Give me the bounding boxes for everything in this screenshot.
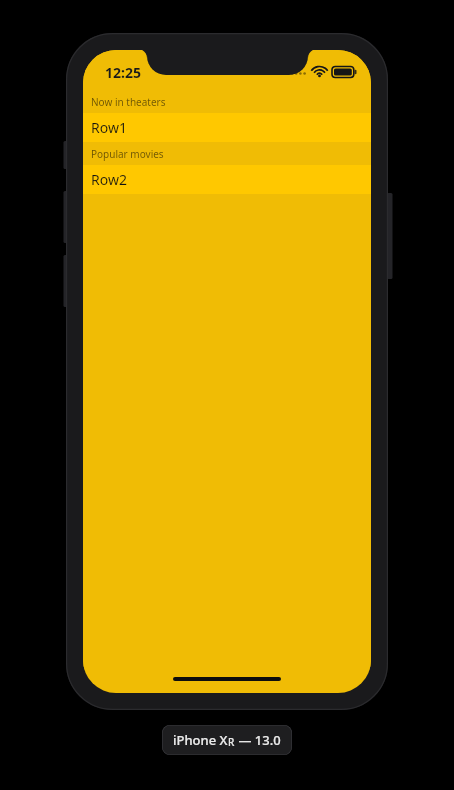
button[interactable]: iPhone X bbox=[162, 725, 292, 755]
staticText: 12:25 bbox=[105, 63, 141, 82]
button[interactable]: Row2 bbox=[83, 165, 371, 194]
staticText: R bbox=[228, 735, 235, 749]
staticText: iPhone X bbox=[173, 731, 228, 749]
staticText: Row2 bbox=[91, 170, 127, 189]
button[interactable]: Row1 bbox=[83, 113, 371, 142]
staticText: Popular movies bbox=[91, 147, 164, 161]
staticText: Now in theaters bbox=[91, 95, 166, 109]
staticText: Row1 bbox=[91, 118, 127, 137]
staticText: — 13.0 bbox=[235, 731, 281, 749]
